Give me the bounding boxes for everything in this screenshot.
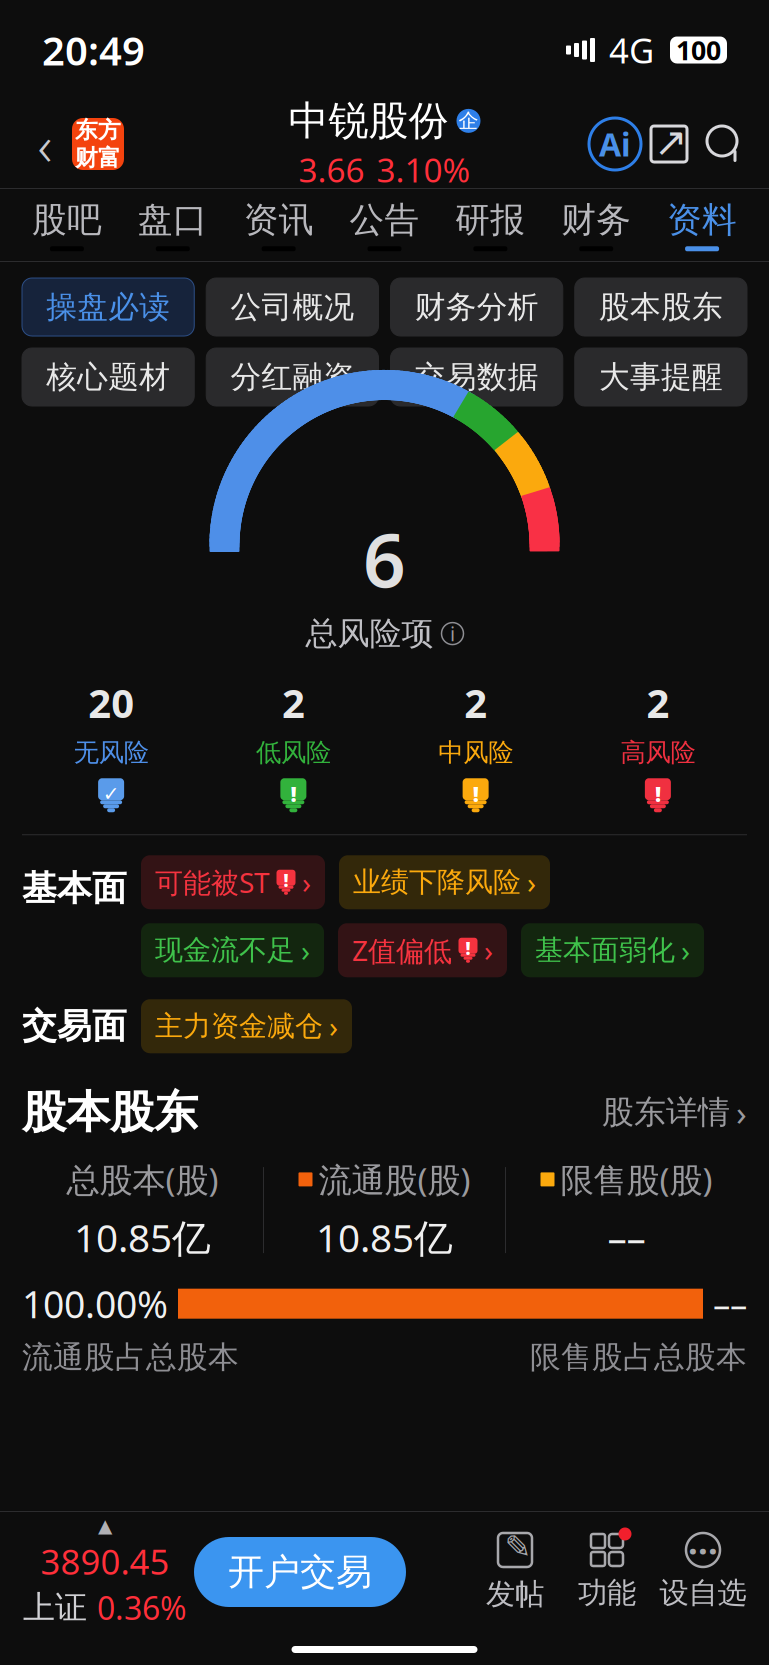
staticText: 东方 bbox=[75, 116, 121, 144]
staticText: 功能 bbox=[578, 1575, 636, 1611]
staticText: 财富 bbox=[75, 144, 121, 172]
staticText: 交易面 bbox=[22, 1005, 127, 1047]
button[interactable]: 公司概况 bbox=[206, 278, 378, 336]
button[interactable]: 财务分析 bbox=[390, 278, 563, 336]
staticText: 2 bbox=[646, 676, 669, 729]
staticText: 100.00% bbox=[22, 1279, 168, 1328]
staticText: 发帖 bbox=[486, 1576, 544, 1612]
staticText: ··· bbox=[688, 1527, 718, 1573]
button[interactable]: Search bbox=[697, 117, 751, 171]
staticText: 20:49 bbox=[42, 23, 145, 76]
staticText: 分红融资 bbox=[230, 358, 354, 396]
button[interactable]: AI assistant bbox=[589, 118, 641, 170]
staticText: 盘口 bbox=[138, 199, 208, 241]
staticText: 现金流不足 bbox=[155, 933, 295, 967]
button[interactable]: 资讯 bbox=[226, 199, 332, 251]
staticText: 交易数据 bbox=[415, 358, 539, 396]
staticText: 设自选 bbox=[659, 1575, 746, 1611]
staticText: 资料 bbox=[667, 199, 737, 241]
button[interactable]: 基本面弱化 bbox=[521, 923, 704, 977]
staticText: 10.85亿 bbox=[74, 1211, 211, 1263]
button[interactable]: Share bbox=[641, 116, 697, 172]
button[interactable]: 功能 bbox=[561, 1533, 653, 1611]
staticText: 6 bbox=[363, 509, 406, 608]
staticText: 业绩下降风险 bbox=[353, 865, 521, 899]
button[interactable]: 可能被ST bbox=[141, 855, 325, 909]
staticText: 股吧 bbox=[32, 199, 102, 241]
staticText: 总风险项 bbox=[305, 614, 433, 653]
staticText: 3890.45 bbox=[40, 1538, 169, 1584]
staticText: 高风险 bbox=[620, 737, 695, 768]
staticText: ‹ bbox=[37, 107, 52, 181]
staticText: ↗ bbox=[654, 119, 688, 165]
staticText: ! bbox=[465, 937, 470, 960]
button[interactable]: 操盘必读 bbox=[22, 278, 194, 336]
staticText: 财务分析 bbox=[415, 288, 539, 326]
button[interactable]: 开户交易 bbox=[194, 1537, 406, 1607]
button[interactable]: 股吧 bbox=[14, 199, 120, 251]
staticText: 研报 bbox=[455, 199, 525, 241]
button[interactable]: ✎ bbox=[469, 1532, 561, 1612]
staticText: 流通股(股) bbox=[318, 1157, 470, 1202]
staticText: 2 bbox=[282, 676, 305, 729]
staticText: –– bbox=[607, 1211, 645, 1263]
staticText: 开户交易 bbox=[228, 1550, 372, 1594]
staticText: 资讯 bbox=[244, 199, 314, 241]
button[interactable]: 股本股东 bbox=[575, 278, 747, 336]
staticText: 股本股东 bbox=[599, 288, 723, 326]
staticText: 10.85亿 bbox=[316, 1211, 453, 1263]
button[interactable]: 现金流不足 bbox=[141, 923, 324, 977]
staticText: –– bbox=[713, 1281, 747, 1327]
staticText: 流通股占总股本 bbox=[22, 1338, 239, 1376]
staticText: ! bbox=[283, 869, 288, 892]
staticText: › bbox=[484, 931, 493, 970]
staticText: ! bbox=[473, 780, 479, 808]
staticText: Z值偏低 bbox=[352, 932, 452, 969]
staticText: 限售股(股) bbox=[560, 1157, 712, 1202]
button[interactable]: ··· bbox=[653, 1533, 753, 1611]
button[interactable]: 核心题材 bbox=[22, 348, 194, 406]
staticText: ! bbox=[655, 780, 661, 808]
staticText: 股东详情 bbox=[602, 1093, 730, 1132]
staticText: 上证 bbox=[23, 1588, 87, 1627]
staticText: 基本面弱化 bbox=[535, 933, 675, 967]
staticText: › bbox=[527, 863, 536, 902]
staticText: 低风险 bbox=[256, 737, 331, 768]
staticText: 财务 bbox=[561, 199, 631, 241]
button[interactable]: 公告 bbox=[332, 199, 437, 251]
staticText: ✎ bbox=[504, 1529, 531, 1565]
button[interactable]: 财务 bbox=[543, 199, 649, 251]
button[interactable]: 股东详情 bbox=[602, 1089, 747, 1135]
button[interactable]: 盘口 bbox=[120, 199, 226, 251]
button[interactable]: 研报 bbox=[437, 199, 543, 251]
button[interactable]: Z值偏低 bbox=[338, 923, 507, 977]
staticText: ✓ bbox=[103, 782, 120, 805]
button[interactable]: 业绩下降风险 bbox=[339, 855, 550, 909]
staticText: ! bbox=[290, 780, 296, 808]
staticText: › bbox=[302, 863, 311, 902]
button[interactable]: 大事提醒 bbox=[575, 348, 747, 406]
staticText: 总股本(股) bbox=[66, 1157, 218, 1202]
button[interactable]: Back bbox=[18, 114, 72, 174]
staticText: Ai bbox=[599, 123, 631, 165]
staticText: 无风险 bbox=[74, 737, 149, 768]
staticText: 操盘必读 bbox=[46, 288, 170, 326]
staticText: i bbox=[450, 620, 455, 647]
staticText: 中锐股份 bbox=[288, 96, 448, 145]
button[interactable]: 主力资金减仓 bbox=[141, 999, 352, 1053]
staticText: 中风险 bbox=[438, 737, 513, 768]
button[interactable]: 交易数据 bbox=[390, 348, 563, 406]
staticText: 20 bbox=[88, 676, 134, 729]
staticText: 可能被ST bbox=[155, 864, 270, 901]
button[interactable]: 分红融资 bbox=[206, 348, 378, 406]
staticText: 大事提醒 bbox=[599, 358, 723, 396]
staticText: 公告 bbox=[349, 199, 419, 241]
staticText: › bbox=[329, 1007, 338, 1046]
staticText: › bbox=[301, 931, 310, 970]
button[interactable]: 东方财富 bbox=[72, 118, 124, 170]
staticText: 3.10% bbox=[376, 147, 470, 192]
staticText: 核心题材 bbox=[46, 358, 170, 396]
button[interactable]: 资料 bbox=[649, 199, 755, 251]
staticText: 主力资金减仓 bbox=[155, 1009, 323, 1043]
staticText: › bbox=[736, 1089, 747, 1135]
